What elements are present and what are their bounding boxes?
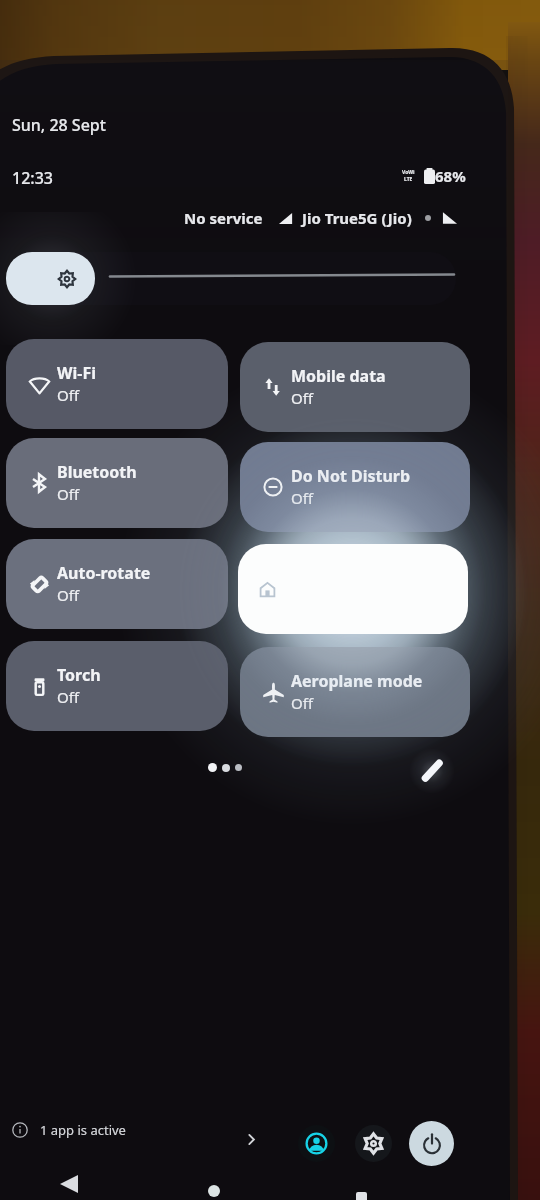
staticText: Aeroplane mode bbox=[291, 670, 423, 692]
button[interactable]: Home bbox=[197, 1174, 231, 1200]
button[interactable]: 1 app is active bbox=[8, 1117, 130, 1143]
staticText: Bluetooth bbox=[57, 461, 137, 483]
staticText: Off bbox=[57, 687, 80, 707]
staticText: Off bbox=[291, 388, 314, 408]
button[interactable]: Wi-Fi bbox=[6, 339, 228, 429]
staticText: Jio True5G (Jio) bbox=[302, 208, 412, 228]
staticText: LTE bbox=[404, 176, 413, 183]
button[interactable]: Aeroplane mode bbox=[240, 647, 470, 737]
button[interactable]: Bluetooth bbox=[6, 438, 228, 528]
staticText: Off bbox=[57, 585, 80, 605]
staticText: Torch bbox=[57, 664, 101, 686]
staticText: Off bbox=[57, 484, 80, 504]
button[interactable]: Auto-rotate bbox=[6, 539, 228, 629]
staticText: Off bbox=[57, 385, 80, 405]
button[interactable]: Edit tiles bbox=[414, 753, 450, 789]
staticText: 1 app is active bbox=[40, 1121, 126, 1139]
staticText: VoWi bbox=[402, 169, 415, 176]
staticText: Auto-rotate bbox=[57, 562, 151, 584]
button[interactable]: Mobile data bbox=[240, 342, 470, 432]
button[interactable]: Power bbox=[409, 1121, 454, 1166]
staticText: No service bbox=[184, 208, 263, 228]
staticText: Mobile data bbox=[291, 365, 386, 387]
staticText: Off bbox=[291, 693, 314, 713]
button[interactable]: Torch bbox=[6, 641, 228, 731]
button[interactable]: Home controls bbox=[238, 544, 468, 634]
button[interactable]: Recent apps bbox=[344, 1180, 378, 1200]
button[interactable]: Settings bbox=[355, 1125, 392, 1162]
button[interactable]: Show active apps bbox=[238, 1126, 264, 1152]
staticText: Off bbox=[291, 488, 314, 508]
staticText: 68% bbox=[435, 166, 466, 186]
staticText: Wi-Fi bbox=[57, 362, 96, 384]
button[interactable]: Page indicator bbox=[208, 763, 242, 772]
button[interactable]: Brightness bbox=[6, 252, 456, 305]
staticText: 12:33 bbox=[12, 167, 53, 189]
staticText: Do Not Disturb bbox=[291, 465, 411, 487]
button[interactable]: Do Not Disturb bbox=[240, 442, 470, 532]
button[interactable]: Account bbox=[298, 1125, 335, 1162]
button[interactable]: Back bbox=[52, 1167, 86, 1200]
staticText: Sun, 28 Sept bbox=[12, 114, 106, 136]
